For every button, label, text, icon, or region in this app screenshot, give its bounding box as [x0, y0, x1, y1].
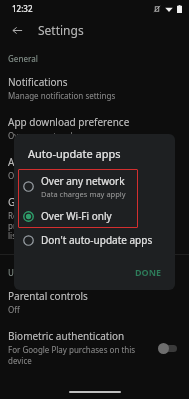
staticText: Notifications	[8, 75, 68, 89]
button[interactable]: Back	[6, 19, 28, 41]
staticText: General	[8, 53, 38, 64]
staticText: Over any network	[41, 174, 125, 188]
button[interactable]: App download preference	[0, 108, 189, 148]
staticText: Parental controls	[8, 289, 88, 303]
staticText: Over Wi-Fi only	[41, 209, 112, 223]
staticText: Auto-update apps	[8, 155, 93, 169]
staticText: Remove history in your Wishlist, the Bet…	[8, 210, 179, 241]
staticText: Manage notification settings	[8, 90, 116, 101]
staticText: Data charges may apply	[41, 189, 126, 199]
staticText: App download preference	[8, 115, 130, 129]
staticText: Settings	[38, 22, 84, 38]
staticText: Google Play preferences	[8, 195, 123, 209]
staticText: Over Wi-Fi only	[8, 170, 65, 181]
staticText: Don't auto-update apps	[41, 233, 153, 247]
button[interactable]: Over Wi-Fi only	[18, 204, 138, 228]
staticText: For Google Play purchases on this device	[8, 344, 157, 366]
button[interactable]: Parental controls	[0, 282, 189, 322]
button[interactable]: Biometric authentication	[0, 322, 189, 373]
staticText: 12:32	[12, 3, 33, 14]
staticText: Biometric authentication	[8, 329, 125, 343]
button[interactable]: Biometric authentication toggle	[157, 341, 181, 355]
button[interactable]: Auto-update apps	[0, 148, 189, 188]
button[interactable]: DONE	[129, 262, 168, 282]
staticText: Auto-update apps	[28, 146, 121, 161]
staticText: DONE	[135, 266, 162, 278]
staticText: Over any network	[8, 130, 75, 141]
button[interactable]: Google Play preferences	[0, 188, 189, 248]
staticText: User controls	[8, 267, 59, 278]
button[interactable]: Don't auto-update apps	[14, 228, 175, 252]
button[interactable]: Over any network	[18, 169, 138, 204]
staticText: Off	[8, 304, 20, 315]
button[interactable]: Notifications	[0, 68, 189, 108]
